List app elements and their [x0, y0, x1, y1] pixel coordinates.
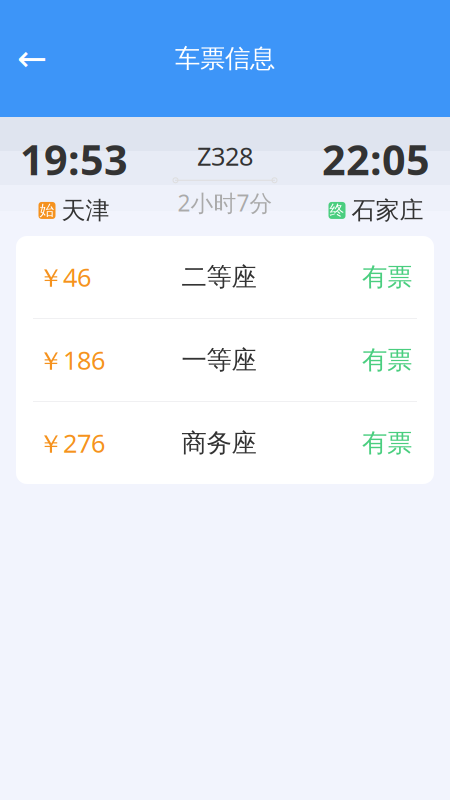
staticText: 有票 — [362, 427, 412, 458]
staticText: ← — [17, 38, 47, 79]
staticText: 19:53 — [20, 132, 128, 187]
staticText: 石家庄 — [351, 196, 423, 225]
button[interactable]: Back — [6, 32, 58, 84]
staticText: 有票 — [362, 344, 412, 375]
staticText: 二等座 — [181, 261, 256, 292]
staticText: ￥46 — [38, 260, 91, 294]
staticText: 始 — [39, 201, 54, 219]
staticText: ￥276 — [38, 426, 105, 460]
button[interactable]: ￥186 — [16, 319, 434, 401]
staticText: 终 — [329, 201, 344, 219]
staticText: 车票信息 — [175, 43, 275, 74]
staticText: 商务座 — [181, 427, 256, 458]
staticText: 天津 — [61, 196, 109, 225]
staticText: 22:05 — [322, 132, 430, 187]
staticText: 有票 — [362, 261, 412, 292]
button[interactable]: ￥276 — [16, 402, 434, 484]
staticText: 2小时7分 — [177, 188, 272, 218]
staticText: ￥186 — [38, 343, 105, 377]
staticText: Z328 — [197, 139, 253, 173]
button[interactable]: ￥46 — [16, 236, 434, 318]
staticText: 一等座 — [181, 344, 256, 375]
